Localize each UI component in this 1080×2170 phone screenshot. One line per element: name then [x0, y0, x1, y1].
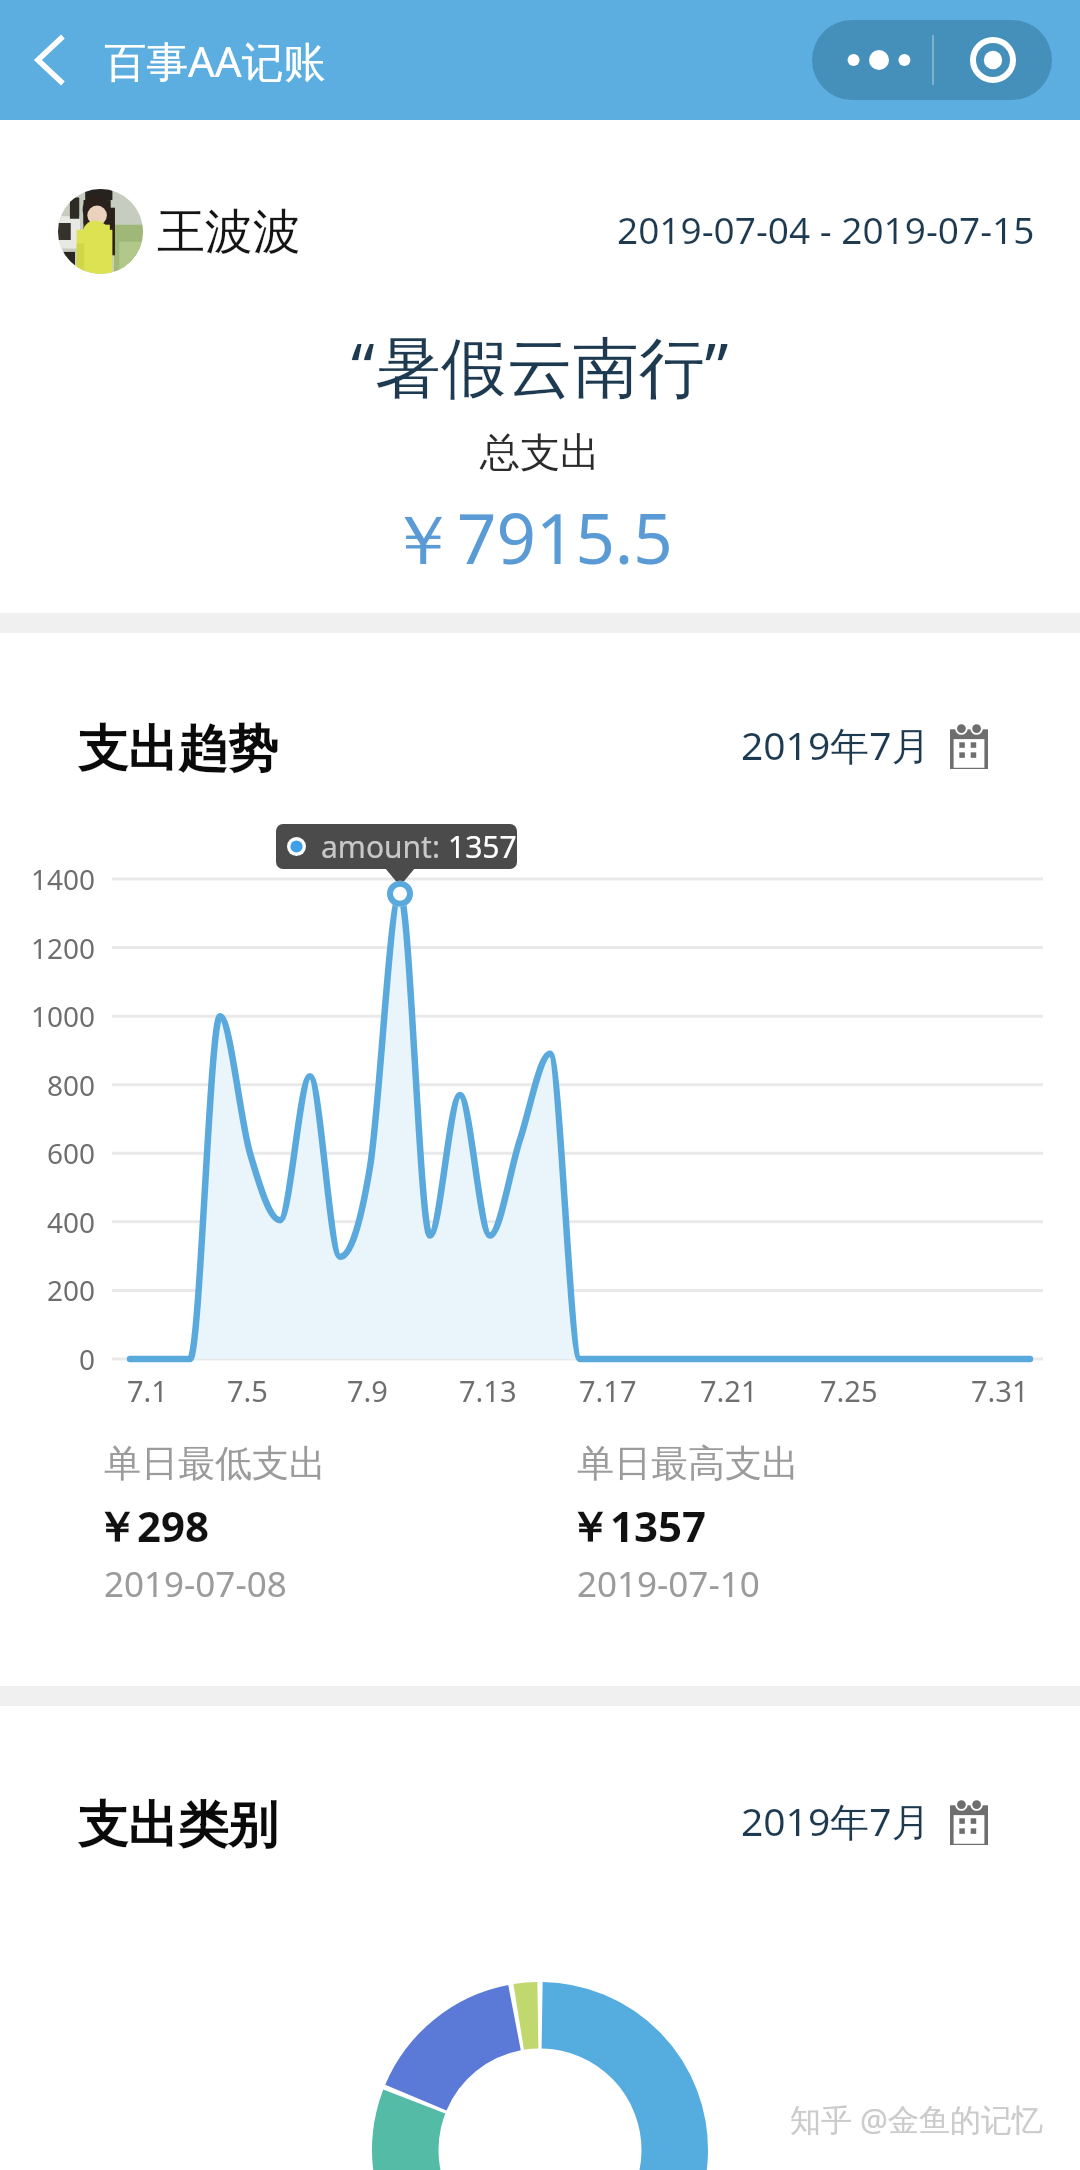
staticText: 7.25: [820, 1371, 878, 1410]
staticText: 7.5: [227, 1371, 268, 1410]
staticText: 2019-07-10: [577, 1560, 760, 1608]
staticText: 7.31: [971, 1371, 1029, 1410]
staticText: 7.1: [127, 1371, 168, 1410]
staticText: “暑假云南行”: [351, 320, 729, 410]
staticText: 百事AA记账: [104, 32, 326, 89]
staticText: 总支出: [480, 427, 600, 477]
staticText: ￥298: [95, 1497, 210, 1554]
staticText: 2019-07-04 - 2019-07-15: [617, 204, 1035, 254]
staticText: amount:: [321, 826, 448, 867]
other: Choose month: [950, 1796, 988, 1845]
staticText: 单日最高支出: [577, 1440, 799, 1487]
button[interactable]: More options: [812, 20, 932, 100]
button[interactable]: Close mini program: [934, 20, 1052, 100]
staticText: ￥7915.5: [388, 490, 673, 584]
button[interactable]: 王波波: [58, 189, 301, 274]
staticText: 2019年7月: [741, 718, 931, 770]
staticText: 800: [47, 1066, 96, 1104]
button[interactable]: 2019年7月: [741, 718, 988, 770]
other: Choose month: [950, 720, 988, 769]
staticText: 600: [47, 1134, 96, 1172]
button[interactable]: Back: [14, 25, 84, 95]
staticText: 7.21: [700, 1371, 758, 1410]
staticText: 200: [47, 1271, 96, 1309]
staticText: 知乎 @金鱼的记忆: [790, 2098, 1043, 2140]
staticText: 1400: [31, 860, 96, 898]
button[interactable]: 2019年7月: [741, 1794, 988, 1846]
staticText: 支出趋势: [78, 718, 278, 781]
staticText: 1000: [31, 997, 96, 1035]
staticText: 2019年7月: [741, 1794, 931, 1846]
staticText: 400: [47, 1203, 96, 1241]
staticText: 王波波: [157, 202, 301, 262]
staticText: 2019-07-08: [104, 1560, 287, 1608]
staticText: 7.17: [579, 1371, 637, 1410]
staticText: 1357: [448, 826, 517, 867]
staticText: 0: [79, 1340, 96, 1378]
staticText: 7.13: [459, 1371, 517, 1410]
staticText: 7.9: [347, 1371, 388, 1410]
staticText: 单日最低支出: [104, 1440, 326, 1487]
staticText: 1200: [31, 929, 96, 967]
staticText: ￥1357: [568, 1497, 707, 1554]
staticText: 支出类别: [78, 1794, 278, 1857]
